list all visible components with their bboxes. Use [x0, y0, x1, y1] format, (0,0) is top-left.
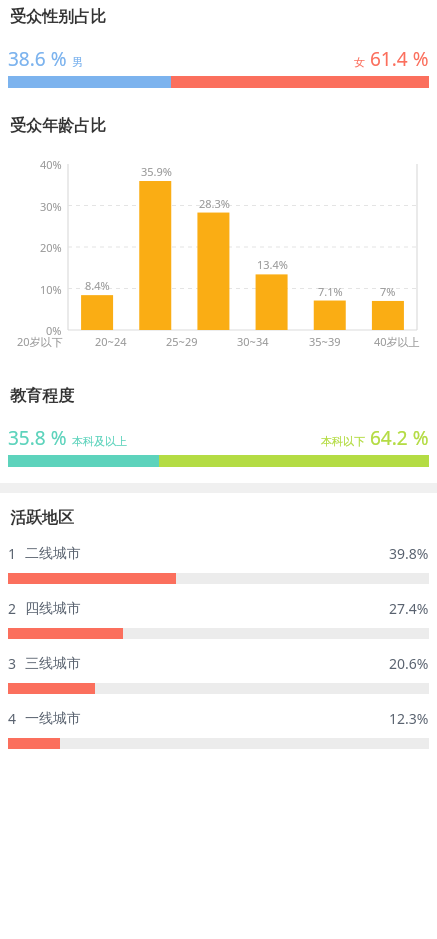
staticText: 四线城市: [25, 600, 81, 618]
staticText: 教育程度: [10, 386, 74, 406]
button[interactable]: 3: [0, 645, 437, 700]
staticText: 35.9%: [141, 164, 172, 179]
staticText: 40岁以上: [374, 334, 420, 349]
button[interactable]: 4: [0, 700, 437, 755]
staticText: 活跃地区: [10, 508, 74, 528]
staticText: 38.6 %: [8, 46, 67, 72]
staticText: 受众年龄占比: [10, 116, 106, 136]
staticText: 20岁以下: [17, 334, 63, 349]
staticText: 35~39: [309, 334, 341, 349]
staticText: 本科以下: [321, 434, 365, 448]
staticText: 13.4%: [257, 257, 288, 272]
staticText: 一线城市: [25, 710, 81, 728]
staticText: 4: [8, 709, 17, 728]
button[interactable]: [8, 455, 429, 467]
staticText: 35.8 %: [8, 425, 67, 451]
button[interactable]: 1: [0, 535, 437, 590]
staticText: 3: [8, 654, 17, 673]
staticText: 本科及以上: [72, 434, 127, 448]
staticText: 61.4 %: [370, 46, 429, 72]
button[interactable]: 35.8 %: [0, 425, 437, 451]
button[interactable]: [8, 76, 429, 88]
staticText: 1: [8, 544, 17, 563]
staticText: 男: [72, 55, 83, 69]
staticText: 10%: [40, 282, 62, 297]
staticText: 20.6%: [389, 654, 429, 673]
staticText: 39.8%: [389, 544, 429, 563]
staticText: 0%: [46, 323, 62, 338]
staticText: 28.3%: [199, 196, 230, 211]
staticText: 20~24: [95, 334, 127, 349]
staticText: 女: [354, 55, 365, 69]
staticText: 三线城市: [25, 655, 81, 673]
staticText: 40%: [40, 157, 62, 172]
staticText: 7.1%: [318, 284, 343, 299]
staticText: 25~29: [166, 334, 198, 349]
staticText: 7%: [380, 284, 396, 299]
staticText: 30~34: [237, 334, 269, 349]
staticText: 2: [8, 599, 17, 618]
staticText: 12.3%: [389, 709, 429, 728]
staticText: 二线城市: [25, 545, 81, 563]
button[interactable]: 38.6 %: [0, 46, 437, 72]
staticText: 8.4%: [85, 278, 110, 293]
staticText: 64.2 %: [370, 425, 429, 451]
button[interactable]: 2: [0, 590, 437, 645]
staticText: 27.4%: [389, 599, 429, 618]
staticText: 受众性别占比: [10, 7, 106, 27]
staticText: 30%: [40, 199, 62, 214]
staticText: 20%: [40, 240, 62, 255]
